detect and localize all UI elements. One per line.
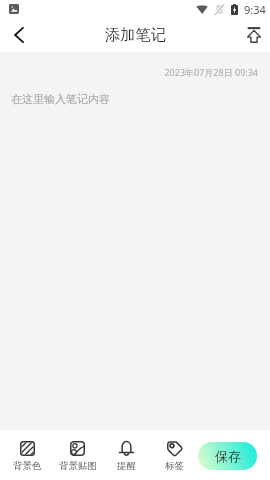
staticText: 2023年07月28日 09:34 — [0, 66, 258, 78]
button[interactable]: Export — [237, 18, 270, 52]
button[interactable]: 标签 — [155, 441, 194, 472]
staticText: 背景贴图 — [59, 460, 97, 472]
button[interactable]: Back — [0, 18, 38, 52]
button[interactable]: 背景色 — [7, 441, 48, 472]
staticText: 背景色 — [13, 460, 42, 472]
button[interactable]: 保存 — [198, 442, 257, 470]
staticText: 9:34 — [244, 2, 266, 17]
button[interactable]: 提醒 — [107, 441, 146, 472]
staticText: 标签 — [165, 460, 184, 472]
staticText: 保存 — [215, 448, 241, 464]
staticText: 提醒 — [117, 460, 136, 472]
staticText: 在这里输入笔记内容 — [11, 92, 110, 106]
staticText: 添加笔记 — [105, 25, 166, 44]
button[interactable]: 背景贴图 — [55, 441, 100, 472]
